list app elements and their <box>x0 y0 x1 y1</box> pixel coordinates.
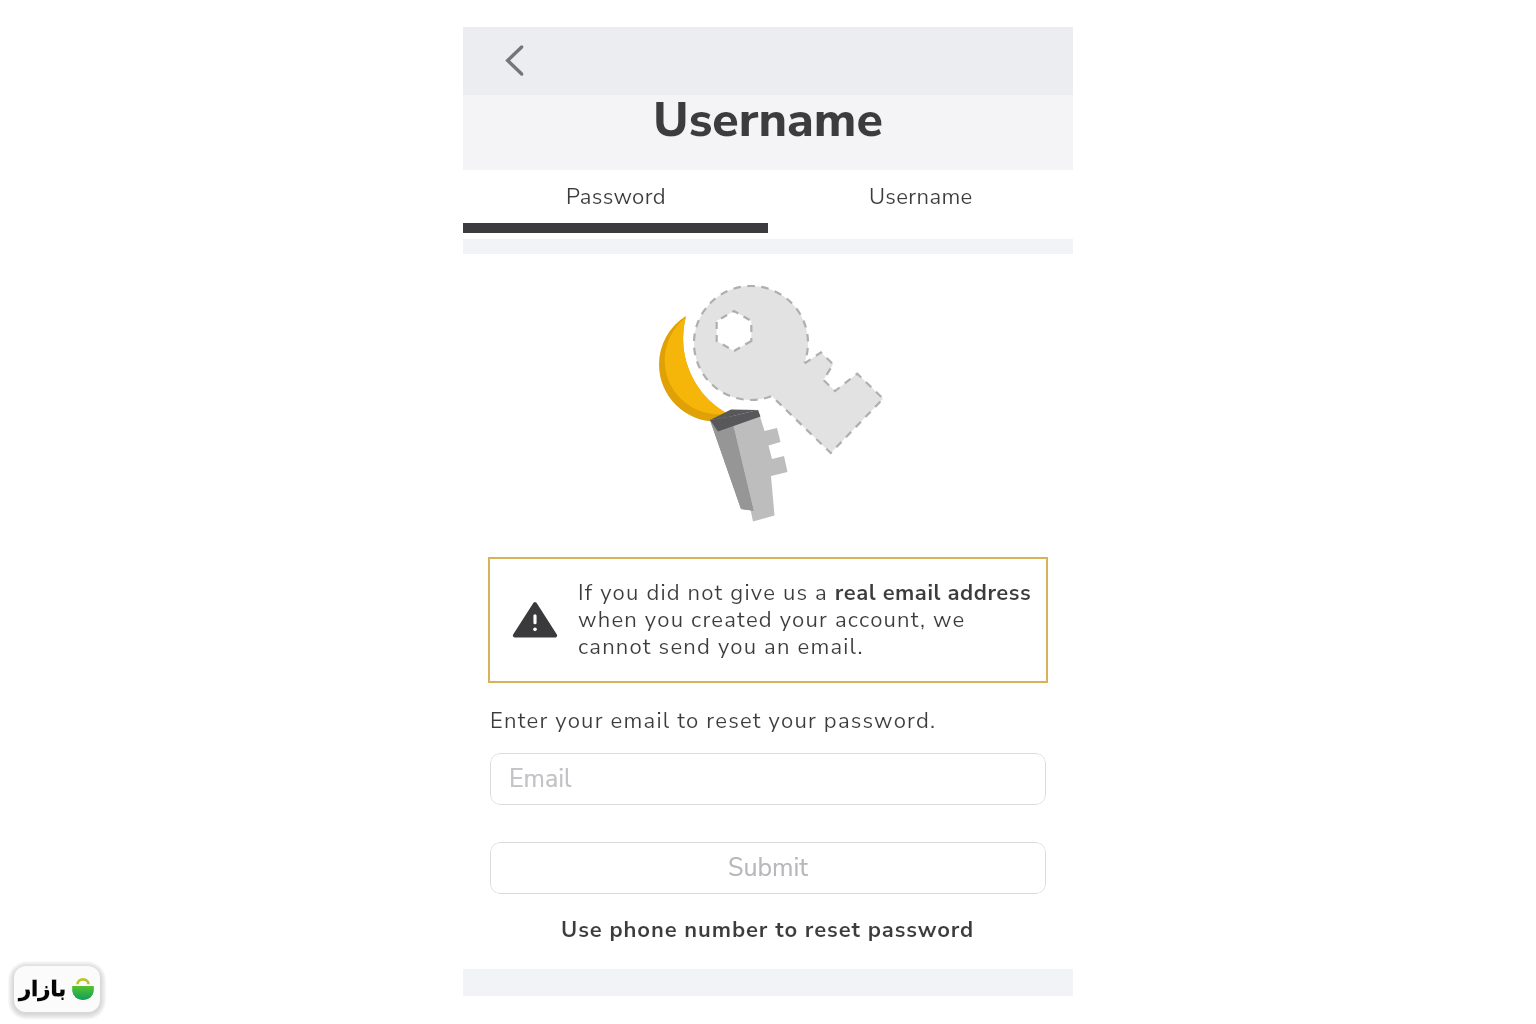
staticText: Use phone number to reset password <box>561 915 975 945</box>
staticText: Email <box>509 762 572 796</box>
staticText: Password <box>566 182 666 212</box>
button[interactable]: Username <box>768 170 1073 223</box>
staticText: If you did not give us a real email addr… <box>578 578 1048 662</box>
button[interactable]: Email <box>490 753 1046 805</box>
staticText: Username <box>869 182 973 212</box>
staticText: Enter your email to reset your password. <box>490 706 937 736</box>
button[interactable]: Password <box>463 170 768 223</box>
button[interactable]: Use phone number to reset password <box>463 915 1073 945</box>
button[interactable]: Back <box>489 35 537 83</box>
staticText: بازار <box>19 977 67 1001</box>
button[interactable]: Submit <box>490 842 1046 894</box>
staticText: Username <box>653 87 883 152</box>
button[interactable]: Bazaar <box>14 966 100 1012</box>
staticText: Submit <box>728 851 808 885</box>
